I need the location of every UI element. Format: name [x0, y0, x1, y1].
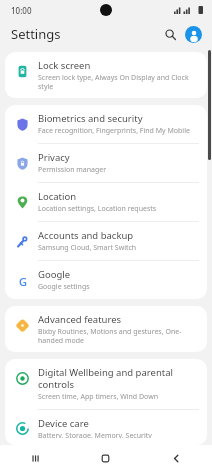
button[interactable]: Biometrics and security: [5, 105, 207, 143]
staticText: Privacy: [38, 151, 70, 164]
staticText: Permission manager: [38, 165, 107, 175]
staticText: Advanced features: [38, 313, 122, 326]
button[interactable]: Account: [185, 26, 202, 43]
button[interactable]: Advanced features: [5, 306, 207, 352]
button[interactable]: Privacy: [5, 144, 207, 182]
staticText: Screen time, App timers, Wind Down: [38, 392, 158, 402]
staticText: Device care: [38, 417, 89, 430]
staticText: Face recognition, Fingerprints, Find My …: [38, 126, 190, 136]
staticText: Location: [38, 190, 77, 203]
staticText: Samsung Cloud, Smart Switch: [38, 243, 137, 253]
staticText: Google: [38, 268, 71, 281]
staticText: Battery, Storage, Memory, Security: [38, 431, 152, 438]
button[interactable]: Accounts and backup: [5, 222, 207, 260]
staticText: Settings: [11, 25, 61, 43]
button[interactable]: Recents: [0, 445, 70, 471]
button[interactable]: G: [5, 261, 207, 299]
staticText: G: [19, 274, 27, 287]
button[interactable]: Home: [70, 445, 141, 471]
button[interactable]: Search: [160, 24, 180, 44]
staticText: Accounts and backup: [38, 229, 134, 242]
button[interactable]: Location: [5, 183, 207, 221]
staticText: Google settings: [38, 282, 90, 292]
staticText: Screen lock type, Always On Display and …: [38, 73, 199, 91]
staticText: 10:00: [11, 5, 32, 16]
button[interactable]: Device care: [5, 410, 207, 445]
button[interactable]: Digital Wellbeing and parental controls: [5, 359, 207, 409]
button[interactable]: Back: [141, 445, 212, 471]
button[interactable]: Lock screen: [5, 52, 207, 98]
staticText: Location settings, Location requests: [38, 204, 157, 214]
staticText: Digital Wellbeing and parental controls: [38, 366, 199, 391]
staticText: Bixby Routines, Motions and gestures, On…: [38, 327, 199, 345]
staticText: Lock screen: [38, 59, 91, 72]
staticText: Biometrics and security: [38, 112, 143, 125]
